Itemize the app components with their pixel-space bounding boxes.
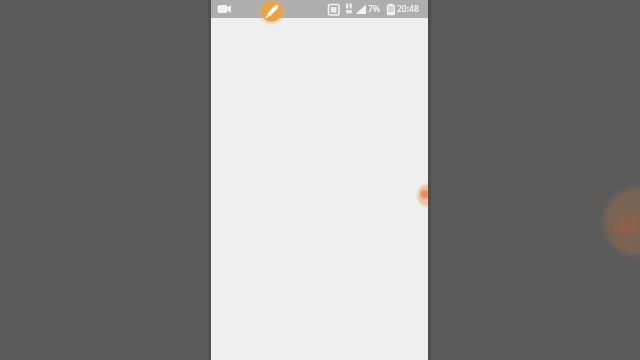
staticText: 7% (368, 3, 381, 15)
button[interactable] (416, 183, 428, 209)
staticText: 20:48 (397, 3, 419, 15)
button[interactable] (257, 0, 287, 27)
